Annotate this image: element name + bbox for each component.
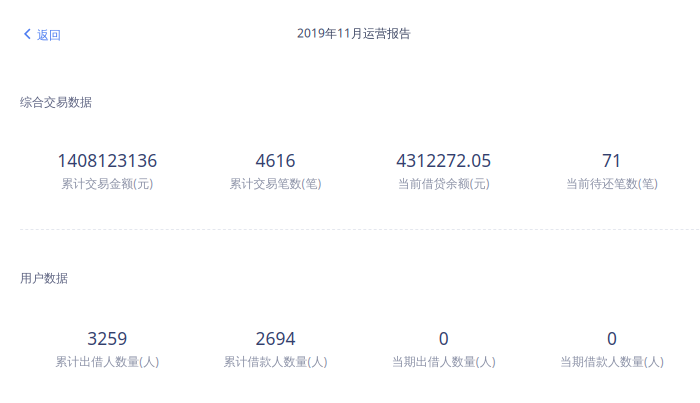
staticText: 4616 [255,149,295,172]
staticText: 累计交易金额(元) [61,175,153,191]
staticText: 0 [439,327,449,350]
button[interactable]: 返回 [6,17,79,54]
staticText: 4312272.05 [396,149,491,172]
staticText: 0 [607,327,617,350]
staticText: 3259 [87,327,127,350]
staticText: 用户数据 [20,271,68,286]
staticText: 综合交易数据 [20,95,92,110]
staticText: 当期出借人数量(人) [392,353,496,369]
staticText: 当前借贷余额(元) [398,175,490,191]
staticText: 2694 [255,327,295,350]
staticText: 71 [602,149,622,172]
staticText: 2019年11月运营报告 [297,25,411,41]
staticText: 当期借款人数量(人) [560,353,664,369]
staticText: 返回 [37,28,61,43]
staticText: 累计借款人数量(人) [223,353,327,369]
staticText: 当前待还笔数(笔) [566,175,658,191]
staticText: 累计交易笔数(笔) [229,175,321,191]
staticText: 累计出借人数量(人) [55,353,159,369]
staticText: 1408123136 [57,149,157,172]
